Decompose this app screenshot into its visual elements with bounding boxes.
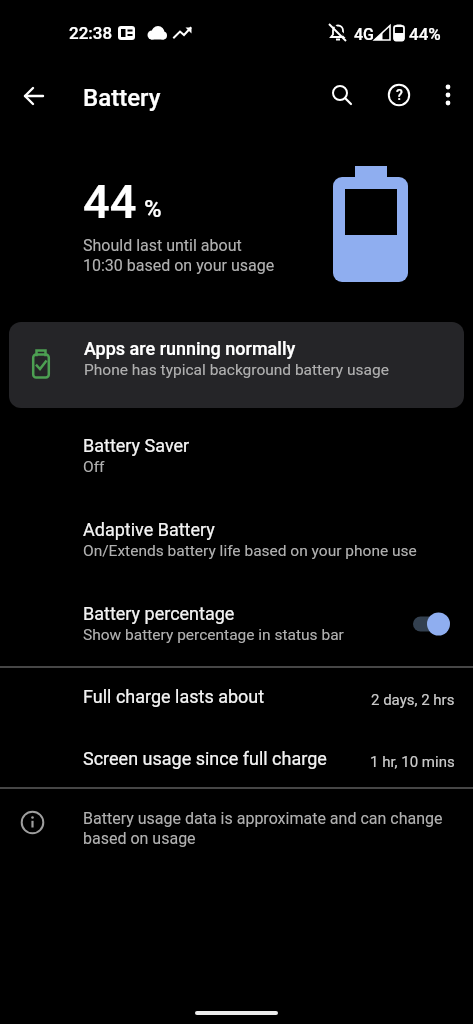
staticText: 44%: [409, 24, 441, 44]
staticText: Should last until about 10:30 based on y…: [83, 236, 275, 275]
staticText: Off: [83, 458, 105, 476]
button[interactable]: Apps are running normally: [9, 322, 464, 408]
staticText: On/Extends battery life based on your ph…: [83, 542, 417, 560]
staticText: Screen usage since full charge: [83, 748, 327, 769]
staticText: 4G: [354, 25, 374, 44]
staticText: %: [144, 195, 162, 223]
staticText: Adaptive Battery: [83, 519, 215, 540]
staticText: 44: [83, 174, 137, 229]
staticText: Battery percentage: [83, 603, 235, 624]
staticText: Apps are running normally: [84, 338, 296, 359]
button[interactable]: Battery percentage: [0, 595, 473, 659]
staticText: Phone has typical background battery usa…: [84, 361, 389, 379]
staticText: Battery Saver: [83, 435, 190, 456]
staticText: Battery: [83, 84, 161, 112]
button[interactable]: [322, 75, 362, 115]
button[interactable]: Battery Saver: [0, 427, 473, 491]
staticText: Full charge lasts about: [83, 686, 265, 707]
staticText: 22:38: [69, 23, 113, 43]
staticText: 1 hr, 10 mins: [370, 753, 455, 771]
button[interactable]: Screen usage since full charge: [0, 736, 473, 788]
staticText: Show battery percentage in status bar: [83, 626, 344, 644]
staticText: Battery usage data is approximate and ca…: [83, 809, 443, 848]
button[interactable]: [413, 612, 450, 636]
staticText: ?: [396, 87, 403, 103]
button[interactable]: [14, 76, 54, 116]
button[interactable]: ?: [379, 75, 419, 115]
button[interactable]: Adaptive Battery: [0, 511, 473, 575]
button[interactable]: [428, 75, 468, 115]
button[interactable]: Full charge lasts about: [0, 674, 473, 726]
staticText: 2 days, 2 hrs: [371, 691, 455, 709]
